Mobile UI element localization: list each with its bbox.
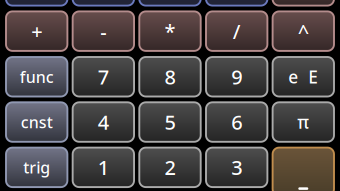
- staticText: 2: [164, 154, 175, 181]
- staticText: 4: [98, 109, 109, 135]
- staticText: 1: [98, 154, 109, 181]
- staticText: π: [297, 110, 309, 133]
- staticText: e E: [288, 65, 318, 88]
- button[interactable]: 9: [206, 57, 267, 96]
- button[interactable]: π: [273, 102, 334, 142]
- staticText: ^: [298, 18, 309, 44]
- staticText: *: [164, 18, 175, 44]
- button[interactable]: [273, 0, 334, 6]
- button[interactable]: -: [73, 11, 134, 51]
- button[interactable]: 8: [139, 57, 201, 96]
- staticText: func: [20, 66, 54, 87]
- staticText: trig: [23, 157, 50, 178]
- button[interactable]: cnst: [6, 102, 67, 142]
- staticText: 7: [98, 63, 109, 90]
- button[interactable]: 5: [139, 102, 201, 142]
- button[interactable]: 1: [73, 148, 134, 187]
- button[interactable]: [273, 148, 334, 191]
- button[interactable]: 6: [206, 102, 267, 142]
- button[interactable]: [139, 0, 201, 6]
- button[interactable]: [6, 0, 67, 6]
- button[interactable]: 7: [73, 57, 134, 96]
- button[interactable]: [73, 0, 134, 6]
- button[interactable]: func: [6, 57, 67, 96]
- button[interactable]: 2: [139, 148, 201, 187]
- button[interactable]: ^: [273, 11, 334, 51]
- button[interactable]: 3: [206, 148, 267, 187]
- button[interactable]: /: [206, 11, 267, 51]
- staticText: 6: [231, 109, 242, 135]
- staticText: 8: [164, 63, 175, 90]
- staticText: -: [100, 18, 106, 44]
- staticText: /: [233, 18, 241, 44]
- button[interactable]: e E: [273, 57, 334, 96]
- button[interactable]: *: [139, 11, 201, 51]
- staticText: cnst: [21, 111, 53, 133]
- staticText: 9: [231, 63, 242, 90]
- button[interactable]: +: [6, 11, 67, 51]
- button[interactable]: trig: [6, 148, 67, 187]
- staticText: +: [31, 18, 42, 44]
- staticText: 3: [231, 154, 242, 181]
- button[interactable]: 4: [73, 102, 134, 142]
- staticText: 5: [164, 109, 175, 135]
- button[interactable]: [206, 0, 267, 6]
